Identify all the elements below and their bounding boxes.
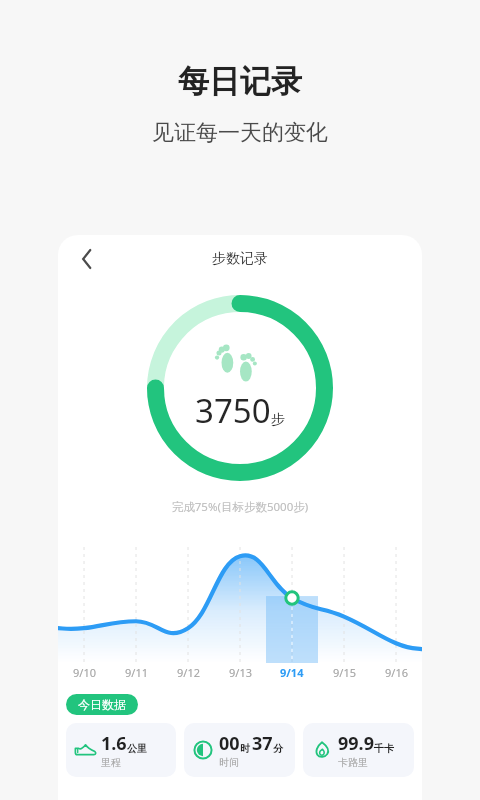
- button[interactable]: 00: [184, 723, 295, 777]
- button[interactable]: 返回: [68, 240, 106, 278]
- staticText: 9/13: [229, 665, 252, 680]
- staticText: 9/15: [333, 665, 356, 680]
- staticText: 时: [240, 742, 250, 755]
- staticText: 每日记录: [178, 62, 302, 101]
- staticText: 千卡: [374, 742, 394, 755]
- staticText: 1.6: [101, 731, 127, 756]
- staticText: 3750: [195, 388, 271, 433]
- staticText: 步: [271, 411, 285, 429]
- staticText: 今日数据: [78, 697, 126, 712]
- button[interactable]: 99.9: [303, 723, 414, 777]
- staticText: 9/12: [177, 665, 200, 680]
- staticText: 分: [273, 742, 283, 755]
- staticText: 卡路里: [338, 756, 368, 769]
- staticText: 里程: [101, 756, 121, 769]
- staticText: 步数记录: [212, 250, 268, 268]
- staticText: 见证每一天的变化: [152, 119, 328, 147]
- staticText: 00: [219, 731, 240, 756]
- staticText: 37: [252, 731, 273, 756]
- staticText: 公里: [127, 742, 147, 755]
- staticText: 9/14: [280, 665, 304, 680]
- staticText: 9/11: [125, 665, 148, 680]
- staticText: 时间: [219, 756, 239, 769]
- staticText: 99.9: [338, 731, 374, 756]
- button[interactable]: 今日数据: [66, 694, 138, 715]
- staticText: 9/10: [73, 665, 96, 680]
- staticText: 完成75%(目标步数5000步): [58, 499, 422, 515]
- button[interactable]: 1.6: [66, 723, 176, 777]
- staticText: 9/16: [385, 665, 408, 680]
